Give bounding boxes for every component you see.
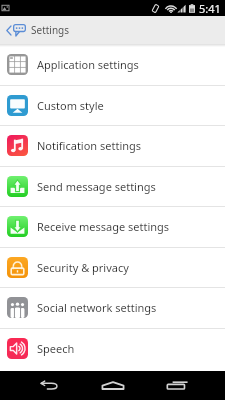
staticText: Send message settings [37,179,156,194]
button[interactable]: Speech [0,328,225,368]
button[interactable]: Security & privacy [0,247,225,287]
button[interactable]: Send message settings [0,166,225,206]
button[interactable]: Back [16,371,80,400]
staticText: Receive message settings [37,219,170,234]
staticText: Application settings [37,57,139,72]
staticText: 5:41 [199,1,221,16]
staticText: Settings [31,23,70,37]
button[interactable]: Notification settings [0,125,225,165]
staticText: Custom style [37,98,104,113]
staticText: Notification settings [37,138,142,153]
button[interactable]: Custom style [0,85,225,125]
button[interactable]: Back [5,16,27,44]
button[interactable]: Receive message settings [0,206,225,246]
staticText: Security & privacy [37,260,129,275]
button[interactable]: Application settings [0,44,225,84]
button[interactable]: Recents [145,371,209,400]
staticText: Speech [37,341,75,356]
staticText: Social network settings [37,300,157,315]
button[interactable]: Home [81,371,145,400]
button[interactable]: Social network settings [0,287,225,327]
